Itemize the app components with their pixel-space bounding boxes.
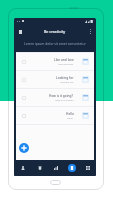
button[interactable]: More options (87, 28, 94, 35)
staticText: Like and love (54, 58, 74, 62)
button[interactable]: Home (50, 180, 61, 185)
staticText: Be creativity (44, 29, 66, 34)
staticText: Looking for (60, 80, 74, 83)
staticText: Lorem ipsum dolor sit amet consectetur (24, 41, 86, 45)
staticText: Hello (66, 112, 74, 116)
button[interactable]: Looking for (16, 71, 94, 88)
button[interactable]: How is it going? (16, 89, 94, 106)
staticText: How is it going? (49, 94, 74, 98)
button[interactable]: Menu (17, 28, 24, 35)
button[interactable]: Hello (16, 107, 94, 124)
staticText: Hello (67, 116, 74, 119)
staticText: How is it going? (55, 98, 74, 101)
button[interactable]: Profile (14, 160, 31, 176)
button[interactable]: Like and love (16, 53, 94, 70)
button[interactable]: Add (19, 143, 29, 153)
button[interactable]: Apps (80, 160, 96, 176)
button[interactable]: Add (64, 160, 80, 176)
button[interactable]: Statistics (48, 160, 64, 176)
staticText: Like and love (58, 62, 74, 65)
button[interactable]: Delete (31, 160, 48, 176)
staticText: Looking for (56, 76, 74, 80)
